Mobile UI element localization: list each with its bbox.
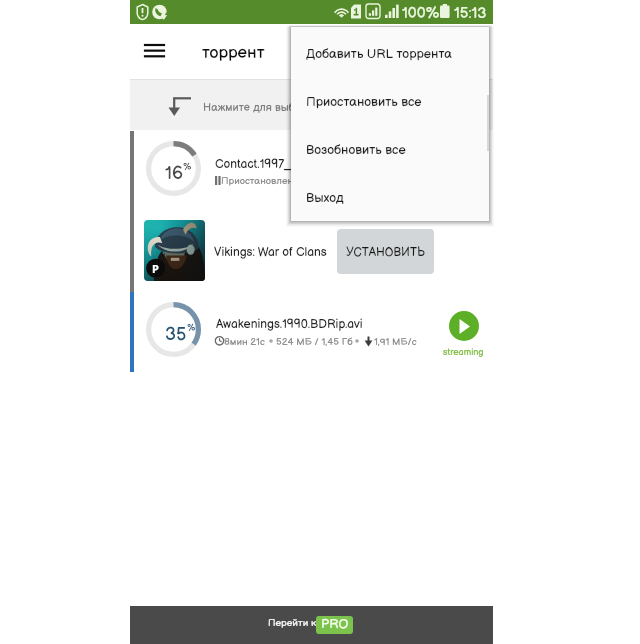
staticText: Выход — [306, 190, 344, 206]
button[interactable]: УСТАНОВИТЬ — [337, 229, 434, 274]
button[interactable]: Выход — [291, 171, 489, 219]
staticText: УСТАНОВИТЬ — [346, 245, 425, 259]
staticText: P — [152, 261, 159, 276]
staticText: 8мин 21с — [224, 336, 265, 348]
staticText: % — [187, 323, 196, 334]
staticText: Awakenings.1990.BDRip.avi — [216, 317, 363, 331]
staticText: Добавить URL торрента — [306, 46, 452, 62]
staticText: 524 МБ / 1,45 Гб — [276, 336, 353, 348]
button[interactable]: Возобновить все — [291, 123, 489, 171]
staticText: Vikings: War of Clans — [214, 245, 327, 259]
staticText: streaming — [443, 347, 484, 358]
staticText: 1,91 МБ/с — [374, 336, 417, 348]
staticText: торрент — [202, 43, 265, 63]
button[interactable]: Нажмите для выбора... — [130, 80, 493, 130]
staticText: Возобновить все — [306, 142, 406, 158]
staticText: 15:13 — [454, 4, 487, 22]
button[interactable]: 16 — [130, 131, 493, 213]
staticText: Приостановлен — [221, 175, 294, 187]
staticText: % — [183, 162, 192, 173]
button[interactable]: Добавить URL торрента — [291, 27, 489, 75]
staticText: 100% — [402, 4, 440, 22]
button[interactable]: 35 — [130, 292, 493, 372]
staticText: 16 — [165, 163, 183, 185]
button[interactable]: Open navigation menu — [132, 33, 176, 77]
staticText: Перейти к — [268, 617, 317, 629]
staticText: 35 — [165, 324, 187, 346]
button[interactable]: P — [130, 215, 493, 285]
button[interactable]: Перейти к — [130, 606, 493, 644]
staticText: Приостановить все — [306, 94, 422, 110]
staticText: Нажмите для выбора... — [203, 101, 320, 114]
staticText: PRO — [321, 616, 349, 632]
button[interactable]: Play streaming — [440, 308, 488, 356]
staticText: Contact.1997_ — [215, 157, 292, 171]
button[interactable]: Приостановить все — [291, 75, 489, 123]
